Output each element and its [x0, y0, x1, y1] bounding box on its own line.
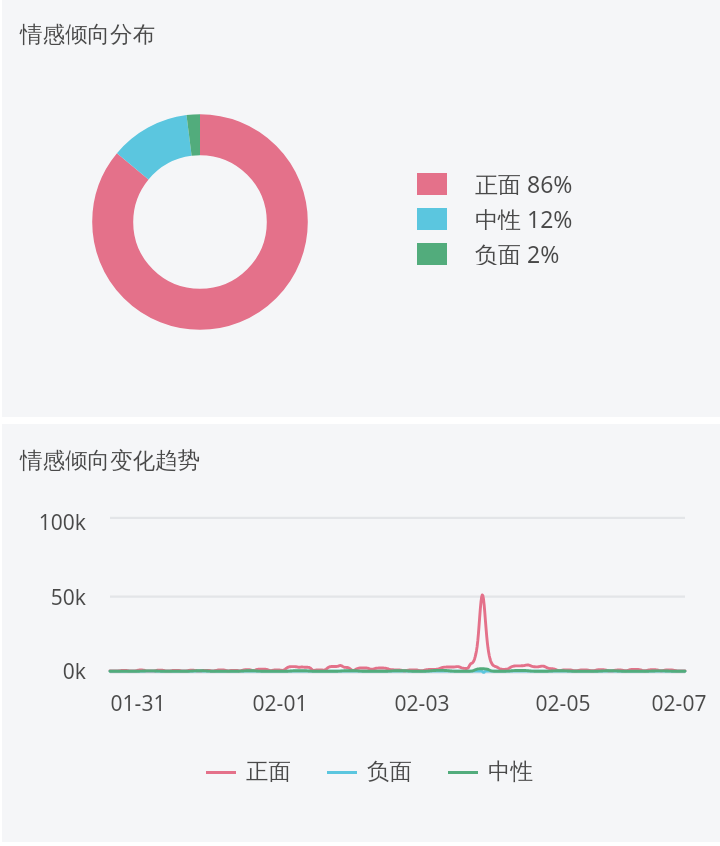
button[interactable]: 负面 2% [417, 238, 560, 270]
staticText: 02-07 [629, 689, 720, 718]
other: 情感倾向变化趋势折线图 [0, 0, 720, 846]
staticText: 负面 2% [475, 238, 560, 265]
staticText: 中性 [488, 757, 533, 785]
button[interactable] [2, 424, 720, 842]
button[interactable]: 中性 12% [417, 203, 573, 235]
staticText: 50k [0, 583, 86, 612]
staticText: 负面 [367, 757, 412, 785]
button[interactable]: 中性 [448, 753, 533, 791]
staticText: 情感倾向分布 [20, 20, 155, 48]
staticText: 0k [0, 657, 86, 686]
button[interactable]: 负面 [327, 753, 412, 791]
staticText: 中性 12% [475, 203, 573, 230]
button[interactable]: 正面 86% [417, 168, 573, 200]
button[interactable]: 情感倾向分布环形图 [92, 114, 308, 330]
staticText: 02-03 [372, 689, 472, 718]
staticText: 正面 86% [475, 168, 573, 195]
button[interactable] [2, 0, 720, 417]
staticText: 02-05 [513, 689, 613, 718]
staticText: 正面 [246, 757, 291, 785]
staticText: 01-31 [88, 689, 188, 718]
staticText: 情感倾向变化趋势 [20, 446, 200, 474]
button[interactable]: 正面 [206, 753, 291, 791]
staticText: 02-01 [230, 689, 330, 718]
staticText: 100k [0, 508, 86, 537]
